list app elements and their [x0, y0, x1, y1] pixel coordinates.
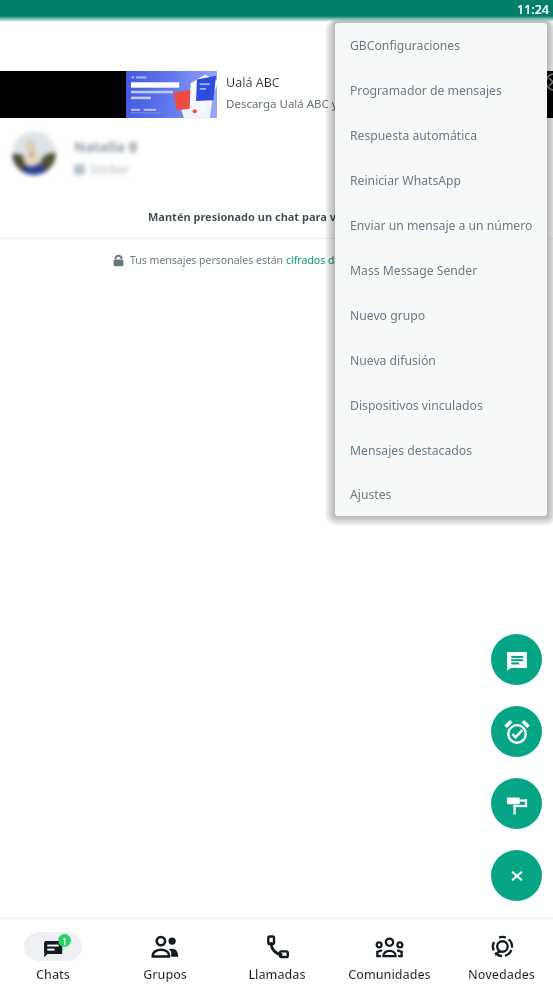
staticText: cifrados de extremo: [286, 253, 385, 267]
staticText: Descarga Ualá ABC y recib: [226, 96, 368, 112]
staticText: Comunidades: [348, 966, 431, 983]
button[interactable]: Nuevo grupo: [335, 293, 547, 338]
button[interactable]: 1: [0, 919, 109, 983]
button[interactable]: Themes: [491, 778, 542, 829]
button[interactable]: Natalia B: [0, 125, 553, 185]
staticText: Tus mensajes personales están: [130, 253, 286, 267]
staticText: 1: [62, 935, 68, 947]
button[interactable]: Novedades: [445, 919, 553, 983]
staticText: Respuesta automática: [350, 127, 478, 144]
button[interactable]: Ajustes: [335, 473, 547, 516]
staticText: Reiniciar WhatsApp: [350, 172, 462, 189]
staticText: Sticker: [90, 161, 130, 178]
button[interactable]: Close: [491, 850, 542, 901]
button[interactable]: Llamadas: [221, 919, 333, 983]
staticText: Novedades: [468, 966, 535, 983]
button[interactable]: Nueva difusión: [335, 338, 547, 383]
staticText: Chats: [36, 966, 70, 983]
staticText: Nuevo grupo: [350, 307, 426, 324]
button[interactable]: Message scheduler: [491, 706, 542, 757]
staticText: Ajustes: [350, 486, 392, 503]
staticText: Natalia B: [74, 137, 138, 156]
button[interactable]: Ualá ABC: [0, 71, 553, 118]
staticText: Programador de mensajes: [350, 82, 502, 99]
button[interactable]: Enviar un mensaje a un número: [335, 203, 547, 248]
staticText: Ualá ABC: [226, 74, 280, 91]
button[interactable]: Reiniciar WhatsApp: [335, 158, 547, 203]
staticText: Mantén presionado un chat para ver más o…: [148, 209, 425, 224]
button[interactable]: Mass Message Sender: [335, 248, 547, 293]
button[interactable]: Mensajes destacados: [335, 428, 547, 473]
staticText: Nueva difusión: [350, 352, 436, 369]
button[interactable]: New chat: [491, 634, 542, 685]
staticText: Llamadas: [248, 966, 306, 983]
button[interactable]: Respuesta automática: [335, 113, 547, 158]
staticText: GBConfiguraciones: [350, 37, 461, 54]
staticText: Dispositivos vinculados: [350, 397, 483, 414]
staticText: Mensajes destacados: [350, 442, 472, 459]
button[interactable]: Programador de mensajes: [335, 68, 547, 113]
staticText: 11:24: [517, 1, 550, 18]
button[interactable]: GBConfiguraciones: [335, 23, 547, 68]
staticText: Grupos: [143, 966, 187, 983]
button[interactable]: Grupos: [109, 919, 221, 983]
staticText: Enviar un mensaje a un número: [350, 217, 533, 234]
staticText: Mass Message Sender: [350, 262, 478, 279]
button[interactable]: Dispositivos vinculados: [335, 383, 547, 428]
button[interactable]: Comunidades: [333, 919, 445, 983]
